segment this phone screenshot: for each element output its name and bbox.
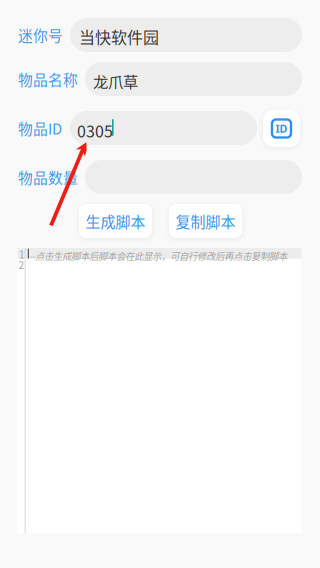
staticText: 迷你号 [18,24,63,45]
staticText: 物品数量 [18,166,78,188]
staticText: 龙爪草 [93,70,138,92]
button[interactable]: 生成脚本 [79,204,152,238]
staticText: ID [275,121,287,136]
staticText: 1 [19,247,25,261]
button[interactable]: 复制脚本 [169,204,242,238]
staticText: 物品ID [18,117,62,139]
staticText: 0305 [77,119,113,142]
button[interactable]: ID [263,110,300,147]
staticText: 物品名称 [18,68,78,90]
staticText: --点击生成脚本后脚本会在此显示，可自行修改后再点击复制脚本 [29,249,287,262]
staticText: 生成脚本 [85,210,145,232]
staticText: 复制脚本 [175,210,235,232]
staticText: 当快软件园 [79,25,159,48]
staticText: 2 [18,257,24,272]
